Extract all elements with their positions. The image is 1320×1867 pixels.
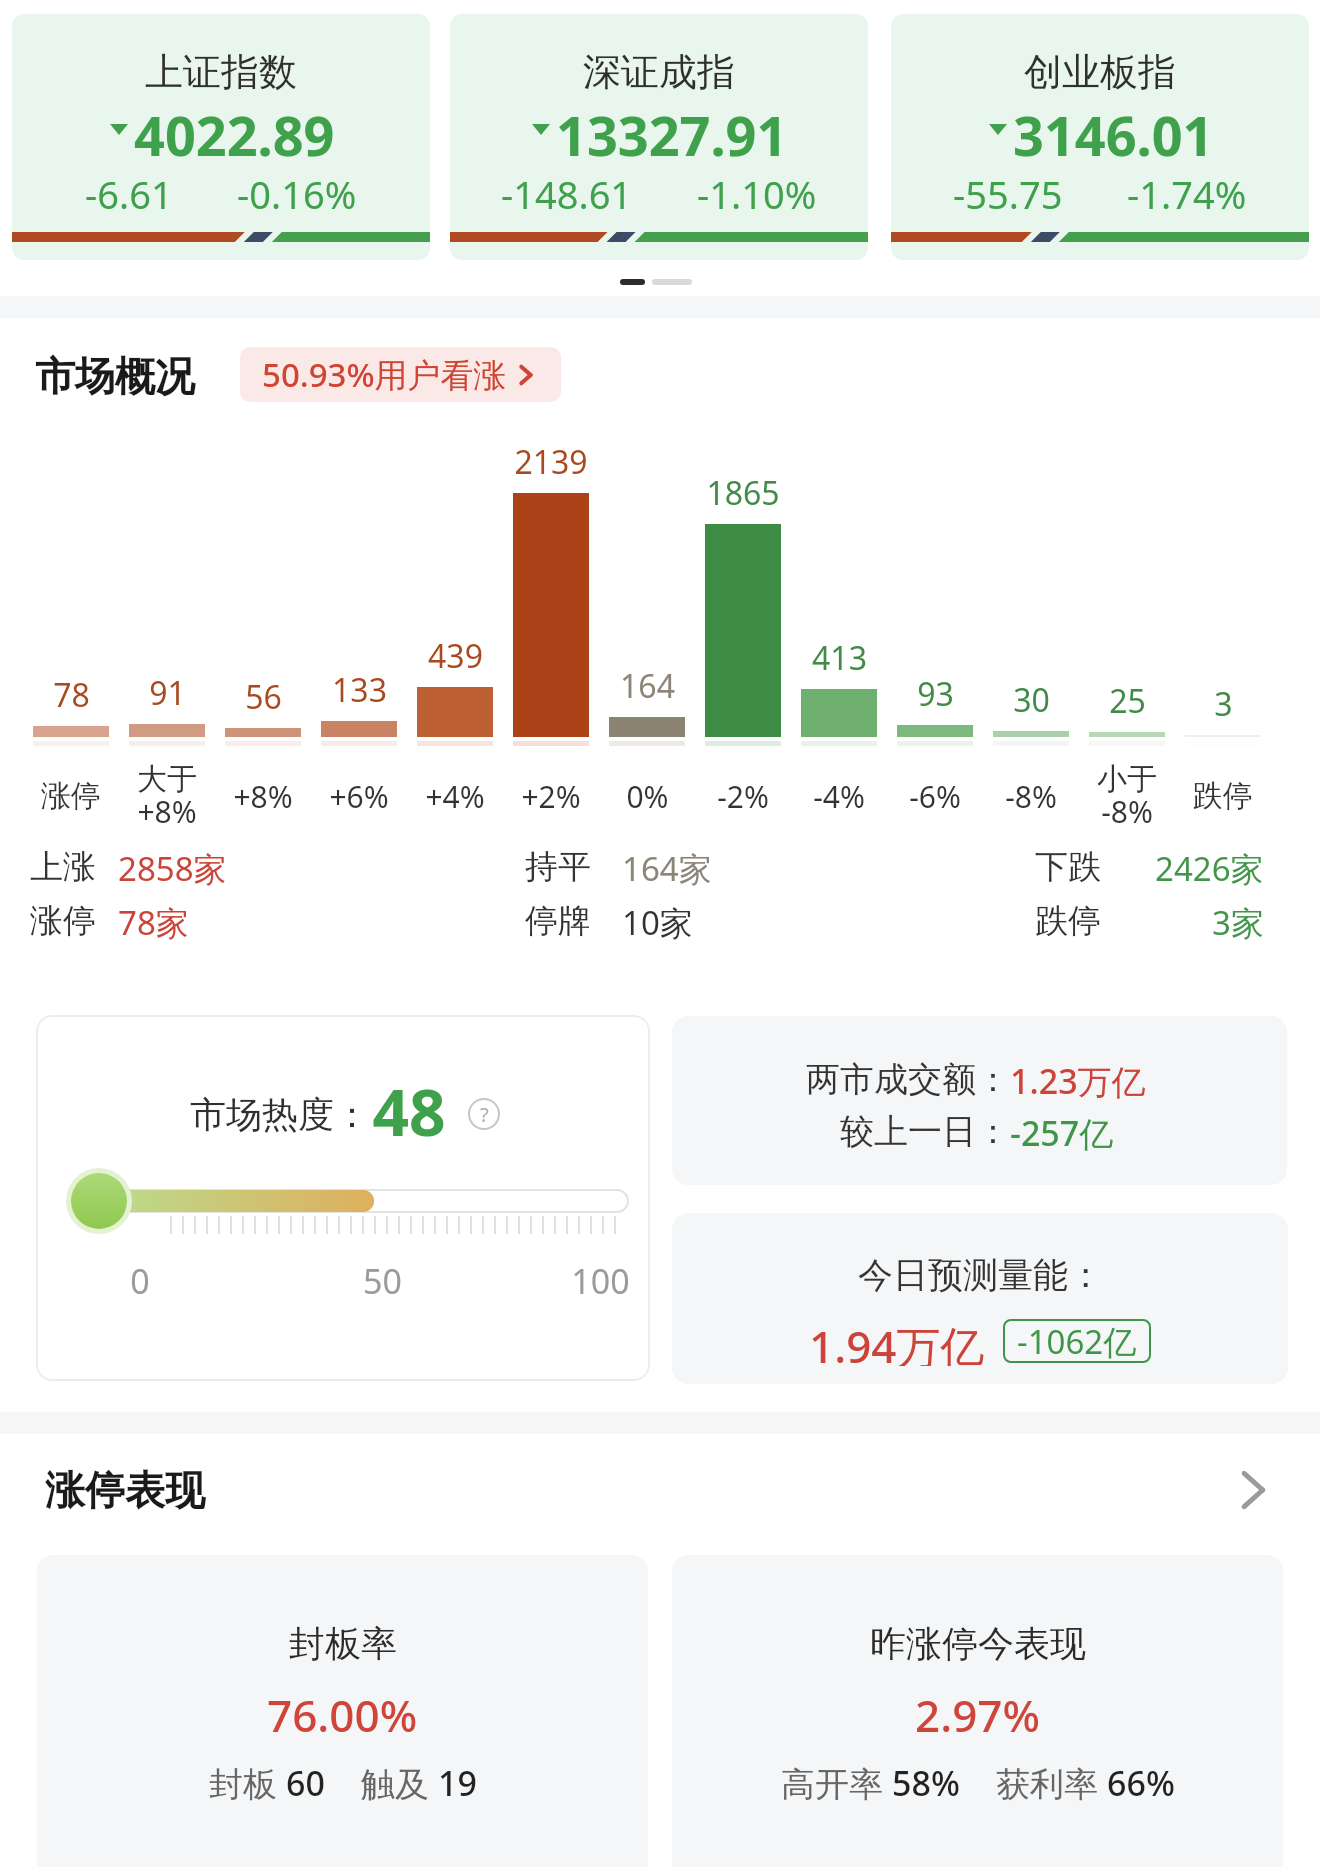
staticText: -0.16%: [237, 168, 357, 212]
staticText: 今日预测量能：: [858, 1253, 1103, 1297]
staticText: 133: [332, 668, 387, 708]
staticText: 66%: [1107, 1760, 1175, 1806]
staticText: 439: [428, 634, 483, 674]
staticText: 93: [917, 672, 954, 712]
staticText: 跌停: [1035, 900, 1101, 942]
staticText: 封板率: [289, 1621, 397, 1666]
button[interactable]: 深证成指: [450, 14, 868, 260]
staticText: 0: [130, 1258, 150, 1298]
button[interactable]: 市场热度：: [36, 1015, 650, 1381]
staticText: -257亿: [1010, 1110, 1114, 1156]
staticText: 两市成交额：: [806, 1058, 1010, 1101]
staticText: 大于 +8%: [137, 760, 197, 830]
staticText: 持平: [525, 846, 591, 888]
staticText: 19: [438, 1760, 477, 1806]
staticText: -148.61: [501, 168, 633, 212]
staticText: 78家: [118, 900, 189, 945]
staticText: -55.75: [953, 168, 1063, 212]
staticText: +8%: [233, 776, 293, 816]
staticText: 昨涨停今表现: [870, 1621, 1086, 1666]
staticText: 2858家: [118, 846, 227, 891]
staticText: 100: [571, 1258, 630, 1298]
staticText: -1062亿: [1017, 1319, 1137, 1363]
staticText: 56: [245, 675, 282, 715]
staticText: 3家: [1212, 900, 1264, 945]
staticText: 停牌: [525, 900, 591, 942]
staticText: +2%: [521, 776, 581, 816]
button[interactable]: 今日预测量能：: [672, 1213, 1288, 1384]
staticText: -8%: [1005, 776, 1057, 816]
staticText: 获利率: [996, 1760, 1107, 1806]
staticText: 封板: [209, 1760, 286, 1806]
staticText: -1.10%: [697, 168, 817, 212]
staticText: 50: [363, 1258, 402, 1298]
staticText: 25: [1109, 679, 1146, 719]
button[interactable]: 50.93%用户看涨: [240, 347, 561, 402]
button[interactable]: 封板率: [37, 1555, 648, 1867]
staticText: 市场概况: [35, 351, 195, 401]
staticText: 48: [372, 1068, 446, 1155]
staticText: 78: [53, 673, 90, 713]
staticText: -6%: [909, 776, 961, 816]
staticText: 涨停表现: [45, 1465, 205, 1515]
staticText: 高开率: [781, 1760, 892, 1806]
staticText: 较上一日：: [840, 1110, 1010, 1153]
staticText: 小于 -8%: [1097, 760, 1157, 830]
staticText: 3: [1214, 682, 1233, 722]
button[interactable]: 上证指数: [12, 14, 430, 260]
button[interactable]: 涨停表现: [0, 1455, 1320, 1525]
staticText: 涨停: [30, 900, 96, 942]
staticText: 3146.01: [1013, 98, 1214, 160]
staticText: -1.74%: [1127, 168, 1247, 212]
staticText: -2%: [717, 776, 769, 816]
staticText: 下跌: [1035, 846, 1101, 888]
staticText: 413: [812, 636, 867, 676]
staticText: 跌停: [1193, 777, 1253, 815]
staticText: 2139: [514, 440, 588, 480]
staticText: 上证指数: [145, 48, 297, 96]
staticText: 4022.89: [134, 98, 335, 160]
staticText: 60: [286, 1760, 325, 1806]
staticText: 市场热度：: [190, 1092, 370, 1137]
staticText: 2.97%: [915, 1685, 1040, 1745]
staticText: 1865: [706, 471, 780, 511]
staticText: 76.00%: [267, 1685, 418, 1745]
staticText: 2426家: [1155, 846, 1264, 891]
staticText: 深证成指: [583, 48, 735, 96]
staticText: +6%: [329, 776, 389, 816]
button[interactable]: 昨涨停今表现: [672, 1555, 1283, 1867]
button[interactable]: 创业板指: [891, 14, 1309, 260]
staticText: 上涨: [30, 846, 96, 888]
staticText: 13327.91: [556, 98, 788, 160]
staticText: 1.23万亿: [1010, 1058, 1146, 1104]
staticText: ?: [480, 1101, 489, 1128]
staticText: 创业板指: [1024, 48, 1176, 96]
staticText: -4%: [813, 776, 865, 816]
staticText: 91: [149, 671, 186, 711]
staticText: 58%: [892, 1760, 960, 1806]
staticText: 30: [1013, 678, 1050, 718]
staticText: 涨停: [41, 777, 101, 815]
staticText: 10家: [622, 900, 693, 945]
button[interactable]: 两市成交额：: [672, 1016, 1287, 1185]
staticText: 164家: [622, 846, 712, 891]
staticText: 164: [620, 664, 675, 704]
staticText: 0%: [626, 776, 669, 816]
staticText: 50.93%用户看涨: [262, 352, 507, 397]
staticText: 1.94万亿: [809, 1316, 985, 1366]
staticText: +4%: [425, 776, 485, 816]
staticText: 触及: [361, 1760, 438, 1806]
staticText: -6.61: [85, 168, 173, 212]
